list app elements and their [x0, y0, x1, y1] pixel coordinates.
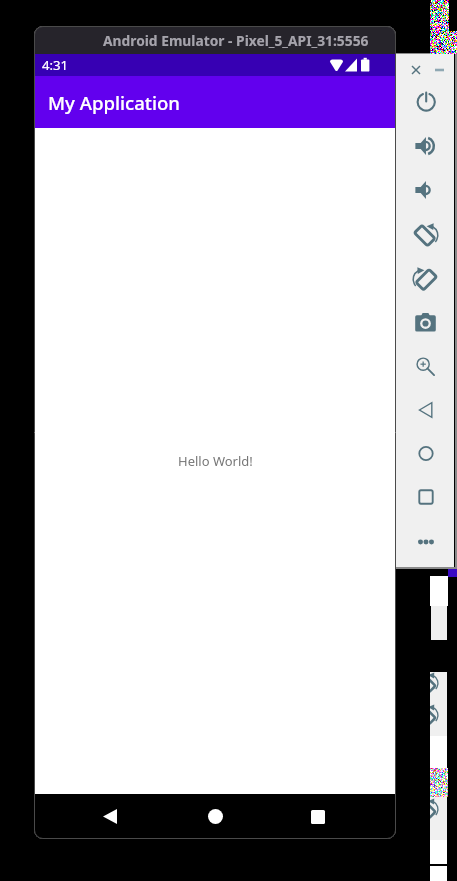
- button[interactable]: Back: [396, 390, 454, 430]
- staticText: Android Emulator - Pixel_5_API_31:5556: [103, 31, 369, 50]
- button[interactable]: Close: [401, 56, 430, 84]
- button[interactable]: Volume up: [396, 126, 454, 166]
- button[interactable]: Volume down: [396, 170, 454, 210]
- staticText: Hello World!: [178, 452, 253, 470]
- button[interactable]: Back: [90, 794, 136, 839]
- button[interactable]: Home: [192, 794, 238, 839]
- button[interactable]: Zoom: [396, 346, 454, 386]
- button[interactable]: Overview: [396, 478, 454, 518]
- staticText: 4:31: [42, 56, 69, 74]
- button[interactable]: Minimize: [425, 56, 454, 84]
- button[interactable]: Take screenshot: [396, 302, 454, 342]
- button[interactable]: More: [396, 522, 454, 562]
- button[interactable]: Power: [396, 82, 454, 122]
- button[interactable]: Rotate left: [396, 214, 454, 254]
- staticText: My Application: [48, 90, 180, 115]
- button[interactable]: Recents: [294, 794, 340, 839]
- button[interactable]: Rotate right: [396, 258, 454, 298]
- button[interactable]: Home: [396, 434, 454, 474]
